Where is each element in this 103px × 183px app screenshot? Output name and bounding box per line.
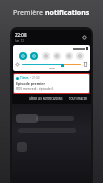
staticText: GÉRER LES NOTIFICATIONS	[29, 97, 63, 101]
button[interactable]: Brightness auto	[15, 62, 20, 67]
button[interactable]: Quick setting off	[53, 52, 61, 60]
staticText: TOUT EFFACER	[69, 97, 87, 101]
button[interactable]: TOUT EFFACER	[67, 96, 89, 102]
button[interactable]: Quick setting off	[65, 52, 73, 60]
button[interactable]: Quick setting off	[76, 52, 84, 60]
button[interactable]: Rotate	[83, 62, 88, 67]
staticText: RDV mercredi : épisode 6	[16, 87, 54, 91]
staticText: • 21:50	[30, 76, 40, 80]
button[interactable]: Titres	[14, 74, 89, 93]
button[interactable]: Quick setting on	[19, 52, 27, 60]
staticText: Première	[13, 8, 45, 18]
staticText: notifications	[45, 8, 90, 18]
button[interactable]: Quick setting off	[42, 52, 50, 60]
staticText: lun. 12	[15, 39, 24, 43]
button[interactable]: GÉRER LES NOTIFICATIONS	[27, 96, 65, 102]
button[interactable]: Quick setting on	[30, 52, 38, 60]
button[interactable]: Settings	[81, 34, 88, 41]
staticText: Titres	[20, 76, 29, 80]
button[interactable]: Brightness slider	[22, 62, 81, 67]
staticText: 22:08	[15, 32, 27, 38]
staticText: Episode premier	[16, 81, 46, 86]
